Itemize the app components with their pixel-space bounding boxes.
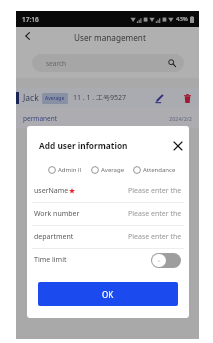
button[interactable]: Time limit toggle [151, 253, 181, 268]
staticText: permanent [23, 114, 58, 123]
button[interactable]: Attendance [133, 164, 176, 176]
staticText: Work number [34, 209, 80, 219]
staticText: Add user information [39, 140, 128, 151]
staticText: Please enter the [128, 209, 182, 219]
staticText: 11 . 1 . 工号9527 [73, 93, 127, 103]
staticText: Please enter the [128, 232, 182, 242]
staticText: Admin ll [58, 166, 82, 174]
staticText: Average [101, 166, 125, 174]
staticText: userName [34, 186, 69, 196]
staticText: Please enter the [128, 186, 182, 196]
button[interactable]: Jack [16, 88, 199, 108]
staticText: search [46, 59, 67, 68]
button[interactable]: Average [91, 164, 125, 176]
staticText: OK [102, 289, 114, 300]
staticText: Attendance [143, 166, 176, 174]
staticText: Jack [23, 92, 39, 104]
staticText: 2024/2/2 [169, 115, 192, 122]
staticText: 17:16 [22, 15, 39, 24]
button[interactable]: Edit [150, 88, 168, 108]
staticText: department [34, 232, 74, 242]
staticText: 43% [176, 15, 188, 23]
staticText: Average [45, 95, 65, 102]
button[interactable]: OK [38, 282, 178, 306]
button[interactable]: Delete [178, 88, 196, 108]
staticText: Time limit [34, 255, 67, 265]
button[interactable]: permanent [16, 108, 199, 128]
button[interactable]: Admin ll [48, 164, 82, 176]
staticText: User management [74, 32, 146, 43]
button[interactable]: search [32, 54, 184, 72]
button[interactable]: Close [170, 138, 186, 154]
button[interactable]: Back [16, 27, 38, 44]
